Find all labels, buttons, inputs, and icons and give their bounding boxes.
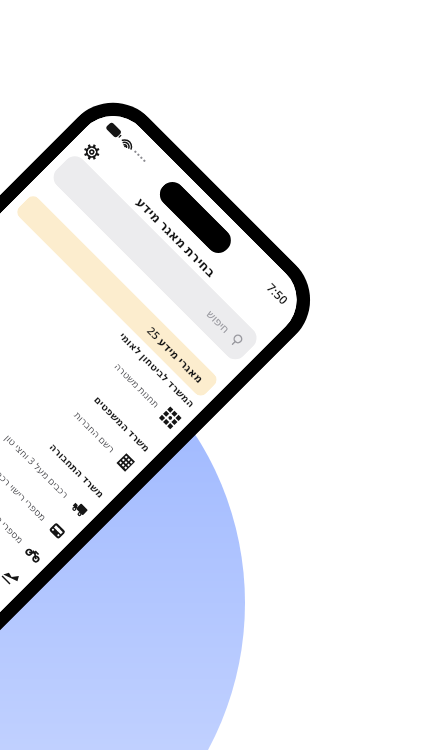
staticText: מספרי רישוי רכב — [0, 468, 49, 524]
staticText: מספרי רכב — [0, 506, 27, 547]
button[interactable]: תחנות משטרה — [0, 219, 194, 441]
button[interactable]: כלי טיס — [0, 378, 35, 600]
staticText: משרד התחבורה — [46, 440, 108, 501]
button[interactable]: רשם החברות — [0, 264, 149, 486]
button[interactable]: מספרי רכב — [0, 355, 58, 577]
button[interactable]: חיפוש — [49, 151, 261, 364]
button[interactable]: 25 מאגרי מידע — [14, 193, 220, 399]
staticText: רשם החברות — [71, 409, 118, 455]
staticText: חיפוש — [203, 308, 232, 337]
button[interactable]: מספרי רישוי רכב — [0, 332, 80, 554]
button[interactable]: רכבים מעל 3 וחצי טון — [0, 310, 103, 532]
staticText: המשרד לביטחון לאומי — [116, 329, 198, 411]
staticText: 7:50 — [264, 279, 292, 308]
staticText: רכבים מעל 3 וחצי טון — [2, 431, 72, 501]
staticText: משרד המשפטים — [91, 392, 154, 455]
staticText: תחנות משטרה — [112, 360, 162, 411]
staticText: בחירת מאגר מידע — [132, 193, 220, 281]
button[interactable]: Settings — [80, 140, 104, 164]
staticText: 25 מאגרי מידע — [144, 323, 208, 387]
